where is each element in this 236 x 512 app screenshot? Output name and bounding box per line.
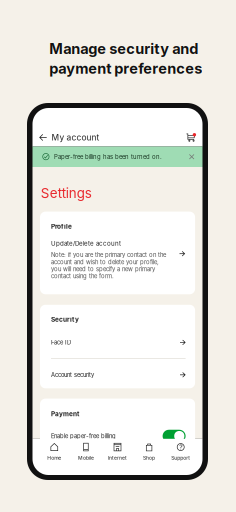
button[interactable]: Account security <box>40 371 195 378</box>
staticText: Profile <box>51 222 72 230</box>
staticText: Home <box>47 455 61 461</box>
staticText: Settings <box>41 185 92 201</box>
button[interactable]: Shopping cart <box>186 127 202 148</box>
staticText: Face ID <box>51 339 71 346</box>
button[interactable]: Home <box>38 439 70 475</box>
staticText: Account security <box>51 371 94 378</box>
staticText: payment preferences <box>49 60 202 77</box>
button[interactable]: Mobile <box>70 439 102 475</box>
staticText: Internet <box>108 455 127 461</box>
button[interactable]: Face ID <box>40 339 195 346</box>
staticText: Manage security and <box>49 40 198 58</box>
staticText: Support <box>171 455 190 461</box>
button[interactable]: ? <box>165 439 196 475</box>
staticText: Update/Delete account <box>51 240 121 247</box>
button[interactable]: Internet <box>102 439 133 475</box>
staticText: Payment <box>51 410 79 418</box>
staticText: My account <box>52 132 100 143</box>
staticText: Shop <box>143 455 155 461</box>
staticText: Mobile <box>78 455 94 461</box>
button[interactable]: Shop <box>133 439 165 475</box>
staticText: Note: if you are the primary contact on … <box>51 251 166 280</box>
staticText: Enable paper-free billing <box>51 432 116 439</box>
staticText: Security <box>51 316 79 323</box>
button[interactable]: My account <box>32 126 100 149</box>
button[interactable]: Enable paper-free billing <box>163 430 186 442</box>
staticText: Paper-free billing has been turned on. <box>54 153 162 160</box>
staticText: ? <box>179 443 182 451</box>
button[interactable]: Update/Delete account <box>40 240 195 280</box>
button[interactable]: Dismiss <box>187 152 196 161</box>
